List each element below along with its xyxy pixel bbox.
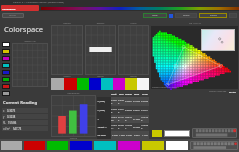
staticText: 126.680 xyxy=(141,124,149,130)
staticText: Standard Transmission Rec.709 xyxy=(152,86,179,88)
staticText: Gamut / CIE xyxy=(12,40,48,43)
staticText: 0.3073 xyxy=(7,109,16,113)
staticText: Red xyxy=(119,92,124,95)
button[interactable]: dE 2000 xyxy=(97,131,149,139)
staticText: 159.86 xyxy=(8,121,17,125)
button[interactable]: Color swatch xyxy=(2,56,10,61)
staticText: Gamut Coverage xyxy=(209,90,227,93)
button[interactable]: Pattern xyxy=(199,13,227,18)
button[interactable]: Zoom inset xyxy=(201,29,235,51)
staticText: Pattern xyxy=(210,14,217,17)
staticText: 104.067 xyxy=(125,124,133,130)
staticText: 0.3021 xyxy=(125,100,133,103)
staticText: 195.911 xyxy=(111,124,118,130)
staticText: 2.936 xyxy=(112,134,118,137)
staticText: Current Reading xyxy=(3,100,38,106)
staticText: Session xyxy=(9,14,17,17)
staticText: Colorspace xyxy=(4,24,44,34)
staticText: x xyxy=(3,109,5,113)
staticText: 0.3073 xyxy=(111,99,118,105)
staticText: Stimulus xyxy=(51,75,83,77)
staticText: 1.904 xyxy=(119,134,125,137)
staticText: x (D65) xyxy=(97,100,105,103)
staticText: 124.730 xyxy=(141,116,149,122)
staticText: White xyxy=(111,92,118,97)
staticText: 0.3238 xyxy=(111,108,118,114)
staticText: RGB Balance xyxy=(51,92,96,95)
button[interactable]: Meter xyxy=(143,13,167,18)
button[interactable]: Color swatch xyxy=(2,49,10,54)
staticText: 57.415 xyxy=(118,116,125,122)
staticText: RL xyxy=(3,121,6,125)
button[interactable]: Target Y xyxy=(97,123,149,131)
button[interactable]: White patch xyxy=(164,130,190,137)
staticText: 3.430 xyxy=(126,134,132,137)
staticText: Stimulus xyxy=(51,137,96,139)
button[interactable]: Color swatch xyxy=(2,84,10,89)
staticText: Meter xyxy=(152,14,158,17)
staticText: Stimulus xyxy=(118,75,149,77)
staticText: CalMAN 5 — Colorspace Analysis (Display … xyxy=(13,1,64,4)
button[interactable]: Color swatch xyxy=(2,42,10,47)
staticText: 0.6436 xyxy=(118,99,125,105)
button[interactable]: Pattern controls xyxy=(190,141,238,150)
staticText: 1.722 xyxy=(142,134,148,137)
staticText: Gamma xyxy=(51,22,83,25)
staticText: 22.094 xyxy=(133,126,141,129)
staticText: Stimulus xyxy=(85,75,116,77)
button[interactable]: Y xyxy=(97,115,149,123)
staticText: 0.6042 xyxy=(125,109,133,112)
staticText: 97.4% xyxy=(229,90,236,93)
staticText: y (D65) xyxy=(97,109,105,112)
staticText: 21.897 xyxy=(133,118,141,121)
staticText: 0.3238 xyxy=(7,115,16,119)
staticText: RGB Bal xyxy=(85,22,116,25)
staticText: 0.3318 xyxy=(118,108,125,114)
button[interactable]: Colorspace xyxy=(1,5,39,11)
staticText: Cyan xyxy=(142,92,148,95)
staticText: 100.710 xyxy=(125,116,133,122)
staticText: Colorspace xyxy=(1,7,16,10)
button[interactable]: Color swatch xyxy=(2,77,10,82)
button[interactable]: Color swatch xyxy=(2,91,10,96)
staticText: 0.3371 xyxy=(141,109,149,112)
staticText: y xyxy=(3,115,5,119)
button[interactable]: Color swatch xyxy=(2,63,10,68)
staticText: Lumin xyxy=(118,22,149,25)
staticText: CIE 1931 xy xyxy=(189,22,201,25)
staticText: Green xyxy=(125,92,133,95)
button[interactable]: Color swatch xyxy=(2,70,10,75)
staticText: Blue xyxy=(134,92,140,95)
button[interactable]: x (D65) xyxy=(97,97,149,106)
staticText: Y xyxy=(97,118,99,121)
staticText: 60.685 xyxy=(118,124,125,130)
staticText: 186.322 xyxy=(111,116,118,122)
staticText: 547.73 xyxy=(13,127,22,131)
button[interactable]: Session xyxy=(2,13,24,18)
staticText: 0.851 xyxy=(134,134,140,137)
staticText: dE 2000 xyxy=(97,134,106,137)
button[interactable]: y (D65) xyxy=(97,106,149,115)
button[interactable]: Meter controls xyxy=(192,128,237,138)
button[interactable]: Source xyxy=(175,13,197,18)
staticText: Source xyxy=(183,14,190,17)
